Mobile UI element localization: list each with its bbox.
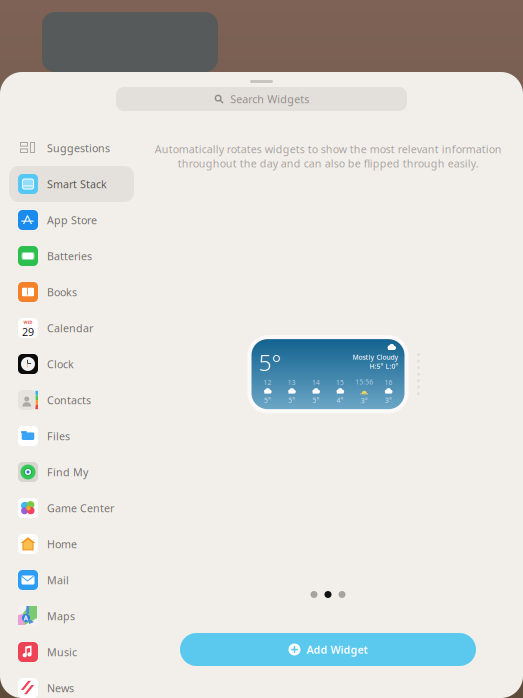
staticText: WED [23, 319, 32, 325]
staticText: 5° [264, 396, 271, 405]
staticText: Files [47, 429, 70, 443]
button[interactable]: App Store [9, 202, 134, 238]
staticText: 4° [337, 396, 344, 405]
staticText: 13 [288, 378, 296, 387]
button[interactable]: WED [9, 310, 134, 346]
staticText: Clock [47, 357, 74, 371]
button[interactable]: Books [9, 274, 134, 310]
staticText: 3° [385, 396, 392, 405]
button[interactable]: Suggestions [9, 130, 134, 166]
staticText: 12 [264, 378, 272, 387]
staticText: Batteries [47, 249, 92, 263]
button[interactable]: Contacts [9, 382, 134, 418]
button[interactable]: Find My [9, 454, 134, 490]
staticText: Music [47, 645, 77, 659]
staticText: Automatically rotates widgets to show th… [154, 142, 501, 170]
staticText: 29 [22, 325, 34, 339]
staticText: 16 [384, 378, 392, 387]
staticText: Search Widgets [230, 92, 309, 106]
staticText: Game Center [47, 501, 114, 515]
button[interactable]: Smart Stack [9, 166, 134, 202]
staticText: H:5° L:0° [369, 362, 398, 370]
staticText: App Store [47, 213, 97, 227]
button[interactable]: Home [9, 526, 134, 562]
staticText: 3° [361, 396, 368, 405]
staticText: Mail [47, 573, 69, 587]
button[interactable]: News [9, 670, 134, 698]
button[interactable]: Files [9, 418, 134, 454]
button[interactable]: A [9, 598, 134, 634]
staticText: A [23, 614, 28, 622]
button[interactable]: Add Widget [180, 633, 476, 666]
staticText: 14 [312, 378, 320, 387]
staticText: Contacts [47, 393, 91, 407]
staticText: Home [47, 537, 77, 551]
staticText: 5° [258, 347, 281, 377]
staticText: 5° [312, 396, 319, 405]
staticText: 15:56 [355, 377, 373, 386]
staticText: Maps [47, 609, 75, 623]
button[interactable]: Music [9, 634, 134, 670]
staticText: Calendar [47, 321, 93, 335]
staticText: Books [47, 285, 77, 299]
staticText: Smart Stack [47, 177, 107, 191]
button[interactable]: Mail [9, 562, 134, 598]
staticText: Add Widget [306, 642, 367, 657]
staticText: Suggestions [47, 141, 110, 155]
button[interactable]: Clock [9, 346, 134, 382]
staticText: Find My [47, 465, 88, 479]
button[interactable]: Game Center [9, 490, 134, 526]
staticText: News [47, 681, 74, 695]
staticText: 15 [336, 378, 344, 387]
staticText: 5° [288, 396, 295, 405]
staticText: Mostly Cloudy [352, 353, 398, 362]
button[interactable]: Batteries [9, 238, 134, 274]
